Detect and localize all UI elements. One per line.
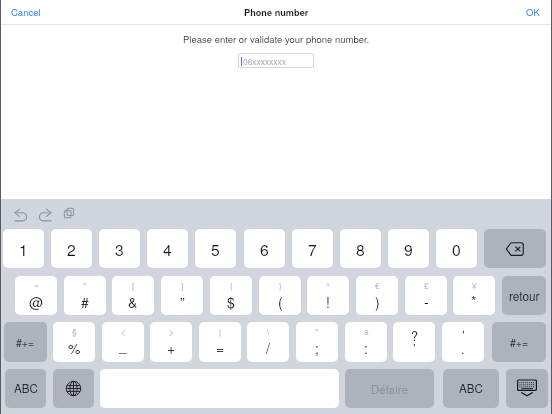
staticText: & — [128, 292, 138, 312]
button[interactable]: 06xxxxxxxx — [238, 53, 314, 68]
staticText: #+= — [16, 335, 35, 350]
staticText: [ — [132, 280, 135, 292]
button[interactable]: ¥ — [453, 276, 495, 315]
button[interactable]: Hide keyboard — [506, 369, 548, 408]
staticText: 9 — [404, 238, 413, 260]
button[interactable]: Change keyboard — [53, 369, 94, 408]
staticText: ” — [180, 292, 185, 312]
button[interactable]: 0 — [436, 229, 477, 268]
staticText: ° — [315, 326, 319, 338]
staticText: #+= — [510, 335, 529, 350]
button[interactable]: 9 — [388, 229, 429, 268]
staticText: 6 — [260, 238, 269, 260]
staticText: a — [364, 326, 369, 338]
button[interactable]: OK — [521, 3, 544, 21]
staticText: Phone number — [244, 6, 309, 19]
staticText: § — [72, 326, 77, 338]
staticText: ^ — [326, 280, 330, 292]
staticText: Défaire — [371, 381, 408, 397]
staticText: = — [216, 338, 225, 358]
staticText: ] — [181, 280, 184, 292]
button[interactable]: \ — [247, 322, 289, 362]
staticText: 8 — [356, 238, 365, 260]
staticText: 0 — [452, 238, 461, 260]
staticText: + — [167, 338, 176, 358]
button[interactable]: 2 — [51, 229, 92, 268]
staticText: 7 — [308, 238, 317, 260]
button[interactable]: | — [199, 322, 241, 362]
staticText: 3 — [115, 238, 124, 260]
button[interactable]: #+= — [4, 322, 47, 362]
button[interactable]: 4 — [147, 229, 188, 268]
staticText: ! — [326, 292, 330, 312]
button[interactable]: ’ — [442, 322, 484, 362]
staticText: . — [461, 340, 465, 358]
button[interactable]: Undo — [11, 205, 31, 225]
button[interactable]: ABC — [5, 369, 46, 408]
staticText: Please enter or validate your phone numb… — [183, 32, 370, 46]
staticText: } — [279, 280, 282, 292]
staticText: 4 — [163, 238, 172, 260]
staticText: * — [471, 291, 477, 311]
staticText: € — [375, 280, 380, 292]
staticText: ¥ — [472, 280, 477, 292]
staticText: ~ — [34, 280, 39, 292]
button[interactable]: § — [53, 322, 95, 362]
button[interactable]: [ — [112, 276, 154, 315]
staticText: ° — [83, 280, 87, 292]
button[interactable]: € — [356, 276, 398, 315]
staticText: % — [68, 338, 81, 358]
button[interactable]: 5 — [195, 229, 236, 268]
staticText: 5 — [211, 238, 220, 260]
button[interactable]: ^ — [307, 276, 349, 315]
button[interactable]: £ — [405, 276, 447, 315]
button[interactable]: 7 — [292, 229, 333, 268]
staticText: 06xxxxxxxx — [243, 55, 286, 67]
button[interactable]: 1 — [3, 229, 44, 268]
button[interactable]: 8 — [340, 229, 381, 268]
staticText: < — [121, 326, 126, 338]
staticText: OK — [526, 5, 540, 19]
button[interactable]: ABC — [443, 369, 499, 408]
staticText: 1 — [19, 238, 28, 260]
staticText: { — [230, 280, 233, 292]
staticText: / — [266, 338, 270, 358]
staticText: retour — [509, 287, 540, 304]
staticText: 2 — [67, 238, 76, 260]
staticText: _ — [119, 335, 127, 355]
staticText: £ — [424, 280, 429, 292]
staticText: - — [424, 291, 429, 311]
button[interactable]: ? — [393, 322, 435, 362]
button[interactable]: ] — [161, 276, 203, 315]
staticText: Cancel — [11, 5, 41, 19]
button[interactable]: 3 — [99, 229, 140, 268]
staticText: @ — [29, 292, 44, 312]
button[interactable]: Cancel — [7, 3, 45, 21]
staticText: ) — [375, 292, 380, 312]
staticText: | — [219, 326, 222, 338]
button[interactable]: Paste — [61, 205, 77, 221]
staticText: : — [364, 338, 368, 358]
button[interactable]: } — [259, 276, 301, 315]
staticText: ? — [411, 327, 418, 345]
staticText: ( — [278, 292, 283, 312]
button[interactable]: 6 — [244, 229, 285, 268]
staticText: ABC — [14, 380, 38, 397]
staticText: > — [169, 326, 174, 338]
button[interactable]: Défaire — [345, 369, 434, 408]
button[interactable]: retour — [502, 276, 546, 315]
staticText: ABC — [459, 380, 483, 397]
button[interactable]: < — [102, 322, 144, 362]
button[interactable]: #+= — [492, 322, 546, 362]
staticText: $ — [227, 292, 235, 312]
button[interactable]: ° — [64, 276, 106, 315]
button[interactable]: ~ — [15, 276, 57, 315]
button[interactable]: Backspace — [484, 229, 546, 268]
button[interactable]: { — [210, 276, 252, 315]
button[interactable]: Redo — [35, 205, 55, 225]
button[interactable]: > — [150, 322, 192, 362]
button[interactable]: a — [345, 322, 387, 362]
button[interactable]: ° — [296, 322, 338, 362]
staticText: \ — [267, 326, 270, 338]
